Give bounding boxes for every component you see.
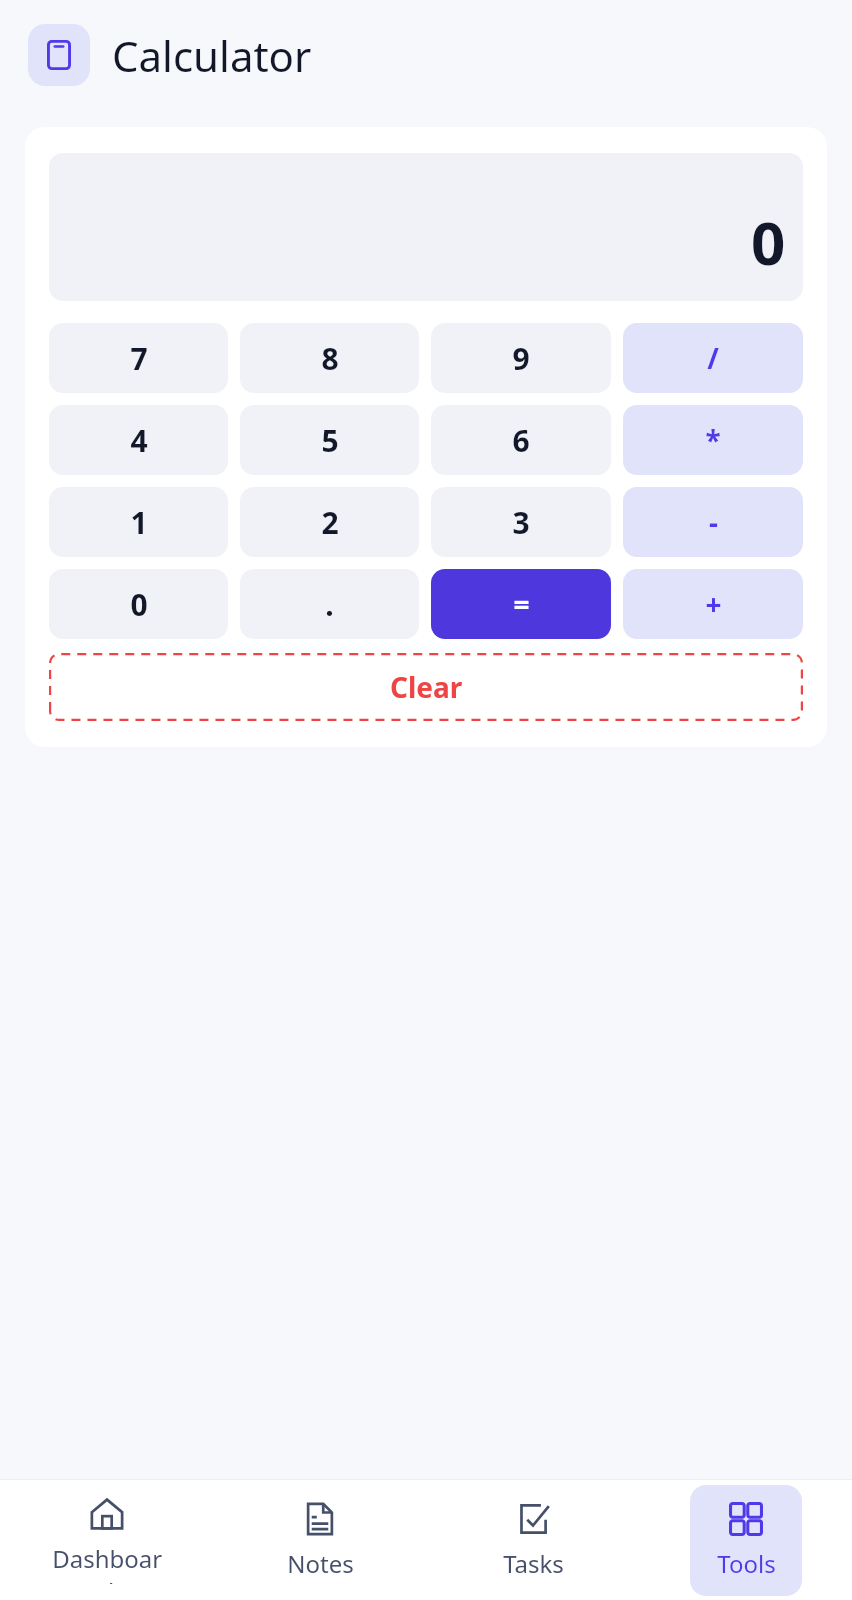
staticText: .: [325, 584, 334, 625]
staticText: 5: [321, 420, 339, 461]
button[interactable]: 2: [240, 487, 419, 557]
button[interactable]: *: [623, 405, 803, 475]
button[interactable]: Dashboard: [51, 1480, 163, 1600]
button[interactable]: Tools: [690, 1485, 802, 1596]
button[interactable]: =: [431, 569, 611, 639]
staticText: 7: [130, 338, 148, 379]
staticText: 1: [130, 502, 148, 543]
staticText: 6: [512, 420, 530, 461]
other: Tools: [728, 1501, 764, 1537]
other: Tasks: [515, 1501, 551, 1537]
button[interactable]: 1: [49, 487, 228, 557]
button[interactable]: 5: [240, 405, 419, 475]
staticText: Tools: [717, 1547, 776, 1580]
other: Notes: [302, 1501, 338, 1537]
staticText: *: [705, 421, 721, 459]
staticText: 0: [751, 201, 786, 283]
button[interactable]: 3: [431, 487, 611, 557]
staticText: 3: [512, 502, 530, 543]
button[interactable]: Notes: [264, 1485, 376, 1596]
other: Dashboard: [89, 1496, 125, 1532]
staticText: /: [707, 339, 719, 377]
staticText: 8: [321, 338, 339, 379]
button[interactable]: 7: [49, 323, 228, 393]
staticText: Clear: [390, 668, 463, 706]
button[interactable]: 0: [49, 569, 228, 639]
button[interactable]: -: [623, 487, 803, 557]
button[interactable]: +: [623, 569, 803, 639]
staticText: 0: [130, 584, 148, 625]
button[interactable]: 8: [240, 323, 419, 393]
staticText: Calculator: [112, 27, 312, 84]
staticText: =: [513, 585, 530, 623]
staticText: Notes: [287, 1547, 354, 1580]
button[interactable]: .: [240, 569, 419, 639]
staticText: +: [705, 585, 722, 623]
button[interactable]: /: [623, 323, 803, 393]
button[interactable]: Tasks: [477, 1485, 589, 1596]
staticText: 4: [130, 420, 148, 461]
staticText: 2: [321, 502, 339, 543]
button[interactable]: 4: [49, 405, 228, 475]
button[interactable]: 6: [431, 405, 611, 475]
staticText: 9: [512, 338, 530, 379]
button[interactable]: 9: [431, 323, 611, 393]
staticText: Dashboard: [51, 1542, 163, 1584]
staticText: Tasks: [503, 1547, 564, 1580]
button[interactable]: Clear: [49, 653, 803, 721]
staticText: -: [709, 503, 718, 541]
